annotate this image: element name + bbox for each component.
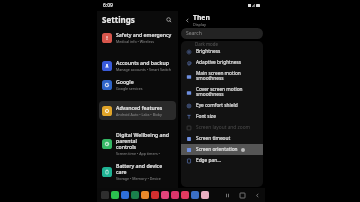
button[interactable]: Font size — [181, 111, 263, 122]
button[interactable]: App 5 — [151, 191, 159, 199]
staticText: Screen timeout — [196, 135, 231, 142]
button[interactable]: App 7 — [171, 191, 179, 199]
button[interactable]: Search — [181, 28, 263, 39]
button[interactable]: Screen layout and zoom — [181, 122, 263, 133]
staticText: Brightness — [196, 48, 221, 55]
button[interactable]: Brightness — [181, 46, 263, 57]
staticText: Safety and emergency — [116, 31, 172, 38]
button[interactable]: Back — [253, 191, 261, 199]
button[interactable]: App 10 — [201, 191, 209, 199]
button[interactable]: Digital Wellbeing and parental controls — [99, 128, 176, 159]
staticText: Android Auto • Labs • Bixby Routines — [116, 112, 173, 117]
staticText: Screen layout and zoom — [196, 124, 251, 131]
button[interactable]: Adaptive brightness — [181, 57, 263, 68]
staticText: Screen orientation — [196, 146, 238, 153]
button[interactable]: Accounts and backup — [99, 56, 176, 75]
button[interactable]: App 4 — [141, 191, 149, 199]
button[interactable]: App 8 — [181, 191, 189, 199]
button[interactable]: Main screen motion smoothness — [181, 68, 263, 84]
staticText: Advanced features — [116, 104, 163, 111]
staticText: Main screen motion smoothness — [196, 70, 241, 82]
staticText: Manage accounts • Smart Switch — [116, 67, 172, 72]
staticText: Adaptive brightness — [196, 59, 242, 66]
staticText: Eye comfort shield — [196, 102, 238, 109]
button[interactable]: Google — [99, 75, 176, 94]
button[interactable]: Search — [163, 14, 174, 25]
button[interactable]: Home — [238, 191, 246, 199]
staticText: Google — [116, 78, 134, 85]
button[interactable]: Edge pan... — [181, 155, 263, 166]
staticText: Battery and device care — [116, 162, 173, 175]
staticText: Cover screen motion smoothness — [196, 86, 243, 98]
staticText: Accounts and backup — [116, 59, 169, 66]
button[interactable]: App 2 — [121, 191, 129, 199]
staticText: 6:09 — [103, 2, 113, 9]
staticText: Then — [193, 13, 210, 22]
staticText: Medical info • Wireless emergency alerts — [116, 39, 173, 44]
staticText: Search — [186, 30, 202, 37]
staticText: Digital Wellbeing and parental controls — [116, 131, 173, 150]
button[interactable]: Safety and emergency — [99, 28, 176, 47]
staticText: Dark mode — [195, 41, 218, 46]
button[interactable]: App 0 — [101, 191, 109, 199]
button[interactable]: Screen orientation — [181, 144, 263, 155]
button[interactable]: Recents — [223, 191, 231, 199]
staticText: Google services — [116, 86, 143, 91]
button[interactable]: App 6 — [161, 191, 169, 199]
button[interactable]: Eye comfort shield — [181, 100, 263, 111]
staticText: Storage • Memory • Device protection — [116, 176, 173, 181]
button[interactable]: Screen timeout — [181, 133, 263, 144]
staticText: Display — [193, 22, 206, 27]
button[interactable]: Advanced features — [99, 101, 176, 120]
staticText: Screen time • App timers • Bedtime mode — [116, 151, 173, 156]
button[interactable]: App 9 — [191, 191, 199, 199]
button[interactable]: Battery and device care — [99, 159, 176, 184]
button[interactable]: Cover screen motion smoothness — [181, 84, 263, 100]
button[interactable]: App 1 — [111, 191, 119, 199]
staticText: Edge pan... — [196, 157, 221, 164]
staticText: Font size — [196, 113, 216, 120]
staticText: Settings — [102, 14, 135, 25]
button[interactable]: App 3 — [131, 191, 139, 199]
button[interactable]: Back — [182, 15, 192, 25]
